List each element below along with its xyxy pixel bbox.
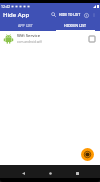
button[interactable]: Info (82, 11, 90, 19)
button[interactable]: Select app (87, 34, 97, 44)
button[interactable]: More options (90, 11, 97, 18)
button[interactable]: HIDE TO LIST (59, 12, 81, 17)
staticText: Hide App (3, 11, 30, 19)
button[interactable]: Home (46, 169, 54, 177)
staticText: com.android.wifi (17, 40, 43, 44)
staticText: HIDE TO LIST (59, 12, 81, 17)
button[interactable]: Recents (73, 169, 81, 177)
staticText: Wifi Service (17, 33, 41, 39)
button[interactable]: APP LIST (0, 20, 50, 31)
button[interactable]: Wifi Service (0, 31, 100, 46)
button[interactable]: HIDDEN LIST (50, 20, 100, 31)
staticText: HIDDEN LIST (64, 23, 87, 28)
button[interactable]: Hide selected apps (81, 148, 94, 161)
button[interactable]: Back (19, 169, 27, 177)
staticText: APP LIST (18, 23, 33, 28)
staticText: 12:42 (1, 4, 10, 9)
button[interactable]: Search (49, 10, 58, 19)
